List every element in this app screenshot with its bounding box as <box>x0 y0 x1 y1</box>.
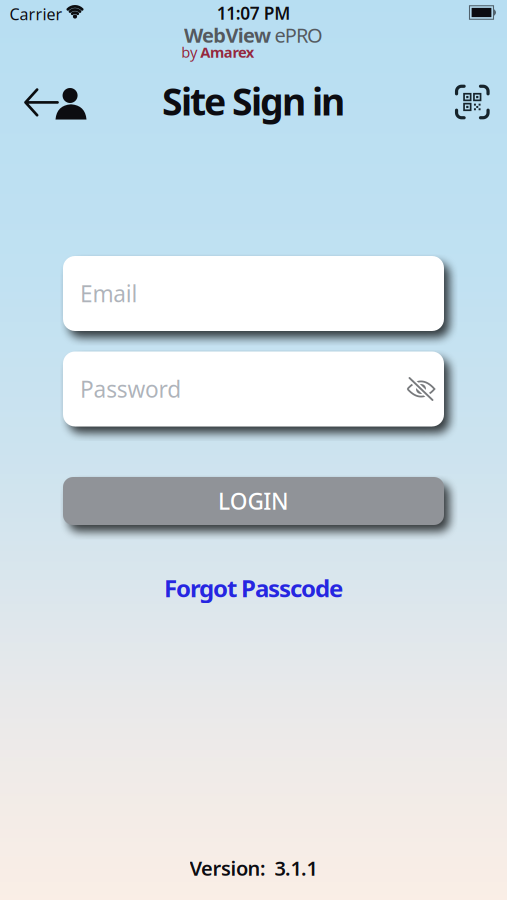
staticText: Forgot Passcode <box>164 572 343 604</box>
button[interactable]: Forgot Passcode <box>164 572 343 604</box>
button[interactable]: Show password <box>406 376 436 402</box>
staticText: Site Sign in <box>162 76 345 126</box>
staticText: Version: 3.1.1 <box>189 855 317 881</box>
button[interactable]: Back <box>24 79 88 124</box>
button[interactable]: Scan QR code <box>450 80 494 124</box>
staticText: 11:07 PM <box>217 1 290 24</box>
button[interactable]: LOGIN <box>63 477 444 525</box>
staticText: Carrier <box>9 3 62 25</box>
staticText: LOGIN <box>218 486 289 516</box>
staticText: by Amarex <box>181 42 254 62</box>
staticText: Email <box>80 278 137 308</box>
staticText: Password <box>80 374 181 404</box>
staticText: WebView ePRO <box>184 22 323 48</box>
